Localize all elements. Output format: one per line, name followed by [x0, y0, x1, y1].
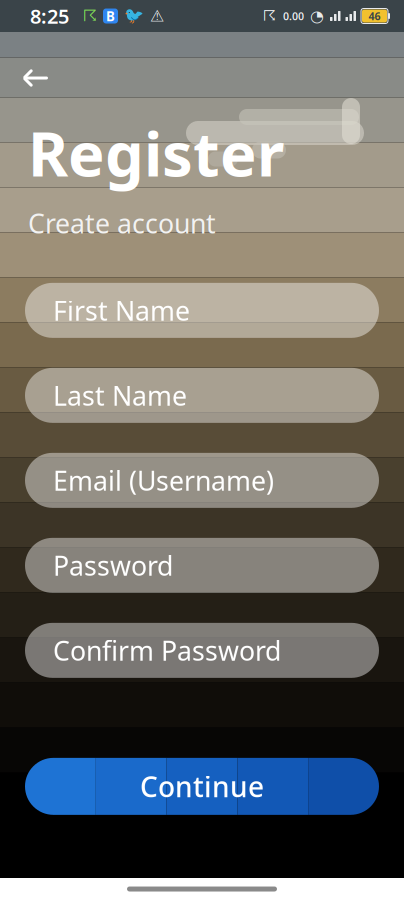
staticText: Continue — [140, 768, 264, 805]
staticText: Confirm Password — [53, 633, 281, 668]
button[interactable]: Confirm Password — [25, 623, 379, 678]
staticText: ⚠ — [150, 7, 164, 25]
button[interactable]: Password — [25, 538, 379, 593]
staticText: 0.00 — [283, 9, 304, 23]
button[interactable]: Email (Username) — [25, 453, 379, 508]
staticText: 🐦 — [124, 7, 144, 25]
button[interactable]: Back — [12, 58, 60, 98]
staticText: Email (Username) — [53, 463, 274, 498]
staticText: B — [106, 7, 115, 25]
button[interactable]: Last Name — [25, 368, 379, 423]
staticText: First Name — [53, 293, 190, 328]
staticText: 8:25 — [30, 3, 69, 29]
button[interactable]: Continue — [25, 758, 379, 815]
staticText: ◔ — [310, 7, 324, 25]
staticText: Last Name — [53, 378, 187, 413]
staticText: 46 — [368, 9, 380, 23]
staticText: Password — [53, 548, 173, 583]
staticText: ☈ — [83, 7, 97, 25]
button[interactable]: First Name — [25, 283, 379, 338]
staticText: ☈ — [263, 8, 276, 24]
staticText: Register — [28, 112, 284, 193]
staticText: Create account — [28, 205, 216, 241]
